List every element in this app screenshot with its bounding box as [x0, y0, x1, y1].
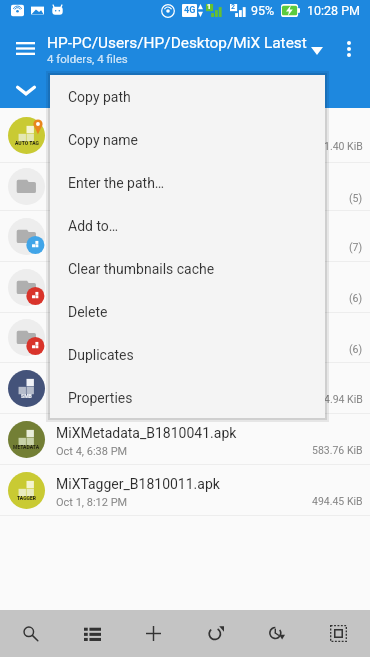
staticText: (6) — [349, 343, 363, 355]
staticText: Copy name — [68, 132, 139, 148]
staticText: Delete — [68, 304, 108, 320]
staticText: MiXTagger_B1810011.apk — [56, 476, 220, 492]
staticText: AutoTagger — [56, 172, 129, 188]
staticText: 2 — [231, 3, 236, 11]
staticText: HP-PC/Users/HP/Desktop/MiX Latest — [47, 34, 307, 52]
button[interactable]: Delete — [50, 290, 325, 333]
staticText: Copy path — [68, 89, 131, 105]
button[interactable]: Enter the path… — [50, 161, 325, 204]
button[interactable]: SMB — [0, 363, 370, 414]
button[interactable]: AutoTagger — [0, 163, 370, 211]
staticText: 1 — [207, 3, 212, 11]
staticText: Enter the path… — [68, 175, 165, 191]
staticText: 583.76 KiB — [312, 444, 363, 456]
button[interactable]: TAGGER — [0, 465, 370, 516]
staticText: Properties — [68, 390, 133, 406]
staticText: AutoTagger — [56, 121, 129, 137]
button[interactable]: Navigation drawer — [4, 27, 46, 69]
staticText: 10:28 PM — [307, 3, 361, 18]
staticText: Oct 1, 8:12 PM — [56, 496, 128, 509]
staticText: Oct 4, 6:38 PM — [56, 445, 128, 458]
button[interactable]: History — [253, 610, 300, 657]
button[interactable]: Add to… — [50, 204, 325, 247]
staticText: 4G — [184, 5, 196, 16]
button[interactable]: Select all — [315, 610, 362, 657]
staticText: (5) — [349, 192, 363, 204]
button[interactable]: New — [130, 610, 177, 657]
button[interactable]: AUTO TAG — [0, 108, 370, 163]
staticText: MiXMetadata — [56, 273, 140, 289]
button[interactable]: MiXTagger — [0, 313, 370, 363]
staticText: TAGGER — [17, 495, 37, 501]
button[interactable]: Refresh — [192, 610, 239, 657]
staticText: Oct 6, 1:22 PM — [56, 394, 128, 407]
staticText: MiXMetadata_B1810041.apk — [56, 425, 237, 441]
button[interactable]: Properties — [50, 377, 325, 418]
staticText: Clear thumbnails cache — [68, 261, 215, 277]
button[interactable]: Collapse tabs — [2, 76, 50, 104]
button[interactable]: Copy name — [50, 118, 325, 161]
staticText: Oct 6, 1:22 PM — [56, 343, 128, 356]
staticText: Add to… — [68, 218, 119, 234]
staticText: Oct 6, 1:22 PM — [56, 141, 128, 154]
staticText: 494.45 KiB — [312, 495, 363, 507]
staticText: Duplicates — [68, 347, 134, 363]
staticText: (6) — [349, 292, 363, 304]
staticText: (7) — [349, 241, 363, 253]
button[interactable]: Expand path — [305, 39, 329, 63]
button[interactable]: METADATA — [0, 414, 370, 465]
button[interactable]: Copy path — [50, 75, 325, 118]
button[interactable]: Clear thumbnails cache — [50, 247, 325, 290]
button[interactable]: List view — [69, 610, 116, 657]
button[interactable]: Duplicates — [50, 333, 325, 377]
staticText: 4 folders, 4 files — [47, 52, 128, 65]
staticText: Icons — [56, 222, 91, 238]
staticText: 4.94 KiB — [324, 393, 363, 405]
staticText: METADATA — [13, 444, 40, 450]
staticText: 95% — [251, 3, 275, 18]
staticText: AUTO TAG — [15, 140, 39, 146]
button[interactable]: Icons — [0, 211, 370, 262]
button[interactable]: MiXMetadata — [0, 262, 370, 313]
staticText: 1.40 KiB — [324, 140, 363, 152]
button[interactable]: Search — [7, 610, 54, 657]
button[interactable]: More options — [334, 34, 364, 64]
staticText: SMB — [21, 393, 32, 399]
